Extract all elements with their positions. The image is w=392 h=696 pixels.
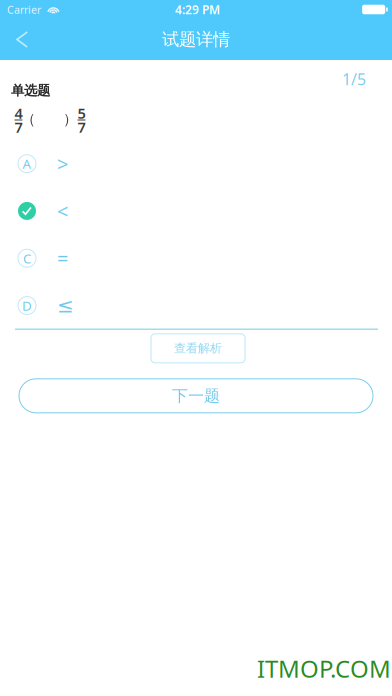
staticText: 下一题 bbox=[172, 386, 220, 406]
button[interactable]: A bbox=[0, 140, 392, 187]
staticText: D bbox=[22, 297, 32, 314]
staticText: < bbox=[57, 198, 68, 224]
staticText: Carrier bbox=[7, 2, 41, 17]
staticText: 试题详情 bbox=[162, 29, 230, 50]
staticText: 4 bbox=[14, 103, 22, 123]
button[interactable]: 下一题 bbox=[19, 379, 373, 413]
staticText: 查看解析 bbox=[174, 341, 222, 356]
button[interactable]: < bbox=[0, 187, 392, 235]
staticText: = bbox=[57, 245, 68, 272]
staticText: ITMOP.COM bbox=[257, 653, 391, 684]
button[interactable]: Back bbox=[0, 19, 42, 60]
button[interactable]: D bbox=[0, 282, 392, 329]
staticText: （ bbox=[21, 110, 36, 128]
button[interactable]: C bbox=[0, 235, 392, 282]
staticText: ≤ bbox=[57, 294, 74, 317]
button[interactable]: 查看解析 bbox=[151, 334, 245, 363]
staticText: 单选题 bbox=[11, 82, 50, 99]
staticText: > bbox=[57, 150, 68, 177]
staticText: ） bbox=[63, 110, 78, 128]
staticText: 4:29 PM bbox=[175, 1, 220, 17]
staticText: 5 bbox=[77, 103, 85, 123]
staticText: 1/5 bbox=[342, 68, 366, 90]
staticText: 7 bbox=[14, 117, 22, 137]
staticText: 7 bbox=[77, 117, 85, 137]
staticText: A bbox=[22, 155, 31, 172]
staticText: C bbox=[23, 249, 31, 267]
